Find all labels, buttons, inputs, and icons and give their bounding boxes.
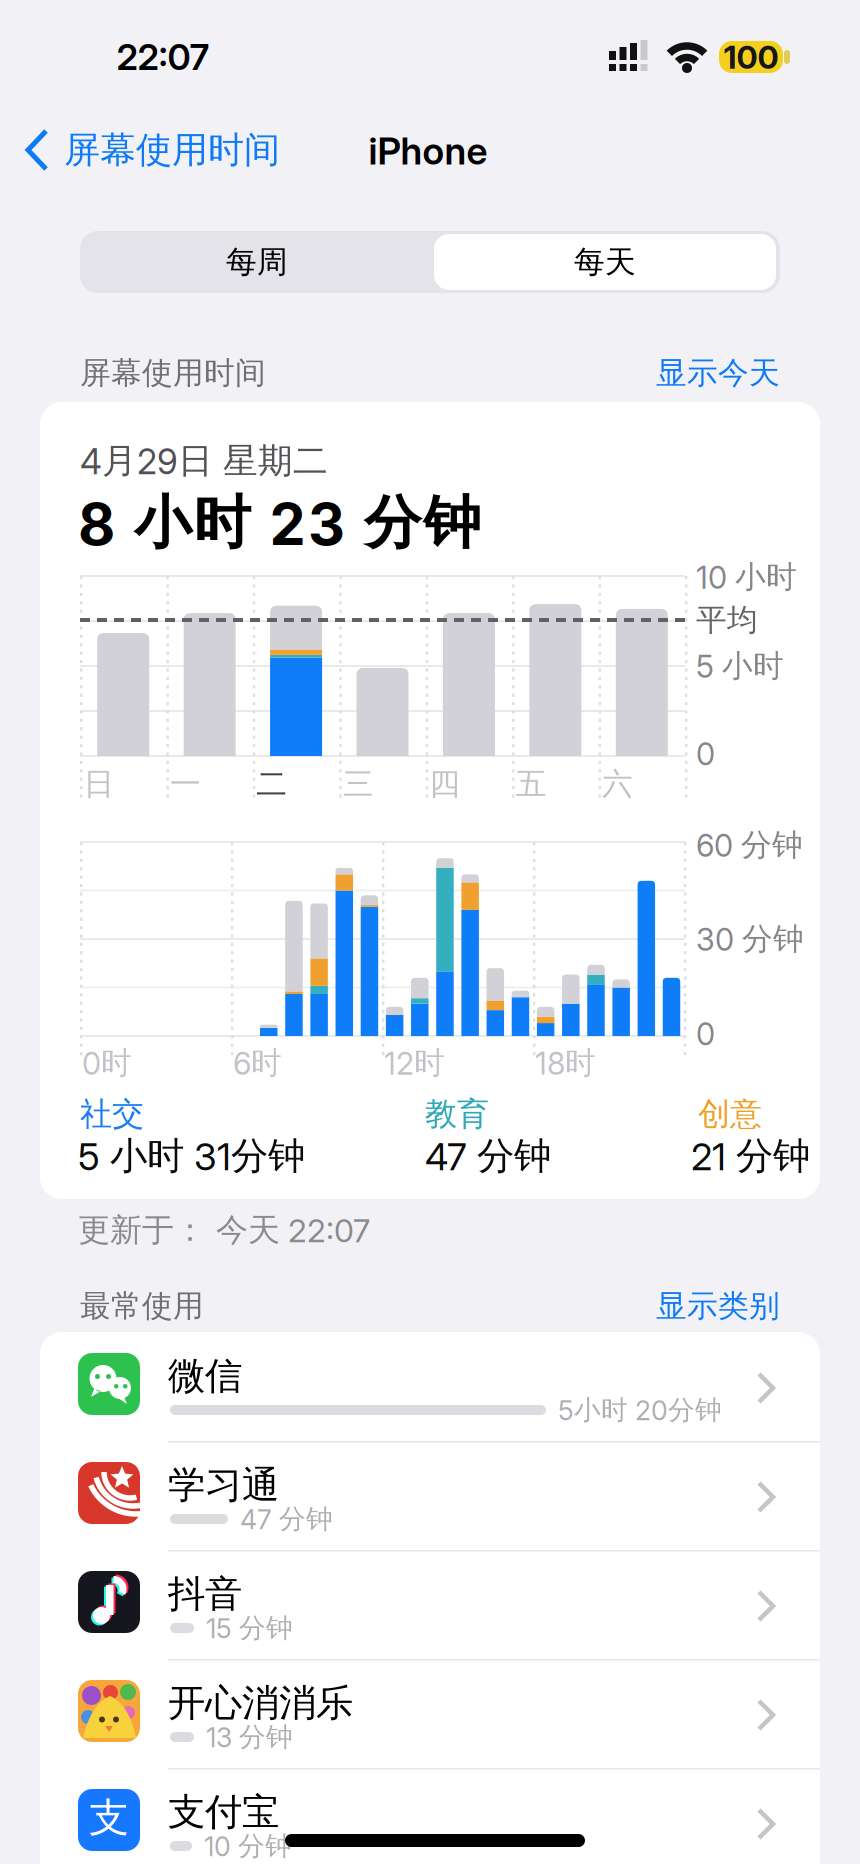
staticText: 显示今天	[656, 354, 780, 392]
button[interactable]: 学习通	[40, 1441, 820, 1550]
staticText: 日	[83, 765, 114, 803]
staticText: 每周	[226, 243, 288, 281]
staticText: 显示类别	[656, 1287, 780, 1325]
button[interactable]: 每天	[430, 231, 780, 293]
staticText: 5 小时 31分钟	[78, 1133, 305, 1179]
staticText: 10 分钟	[204, 1830, 292, 1862]
staticText: 二	[256, 765, 287, 803]
staticText: 五	[516, 765, 547, 803]
button[interactable]: 每周	[80, 231, 430, 293]
staticText: 教育	[425, 1094, 489, 1134]
staticText: 18时	[535, 1044, 596, 1082]
button[interactable]: 屏幕使用时间	[25, 121, 305, 179]
staticText: 六	[602, 765, 633, 803]
staticText: 8 小时 23 分钟	[78, 488, 480, 558]
staticText: 6时	[233, 1044, 282, 1082]
staticText: 60 分钟	[696, 826, 803, 864]
staticText: 100	[723, 38, 778, 76]
button[interactable]: 开心消消乐	[40, 1659, 820, 1768]
staticText: 0	[696, 1016, 715, 1052]
staticText: 5小时 20分钟	[558, 1394, 722, 1426]
staticText: 30 分钟	[696, 920, 804, 958]
staticText: 47 分钟	[240, 1503, 333, 1535]
staticText: 最常使用	[80, 1287, 204, 1325]
staticText: 创意	[698, 1094, 762, 1134]
staticText: 平均	[696, 601, 758, 639]
staticText: 13 分钟	[206, 1721, 293, 1753]
staticText: 0时	[82, 1044, 132, 1082]
staticText: 学习通	[168, 1462, 279, 1508]
staticText: 4月29日 星期二	[80, 440, 328, 482]
staticText: 5 小时	[696, 647, 784, 685]
staticText: 更新于： 今天 22:07	[78, 1210, 370, 1250]
staticText: 每天	[574, 243, 636, 281]
button[interactable]: 显示今天	[0, 0, 300, 54]
staticText: 22:07	[116, 36, 209, 78]
staticText: 抖音	[168, 1571, 242, 1617]
button[interactable]: 显示类别	[0, 0, 300, 54]
staticText: 四	[429, 765, 460, 803]
staticText: 屏幕使用时间	[80, 354, 266, 392]
staticText: 0	[696, 736, 715, 772]
button[interactable]: 微信	[40, 1332, 820, 1441]
staticText: 47 分钟	[425, 1133, 551, 1179]
staticText: 12时	[384, 1044, 445, 1082]
staticText: 支付宝	[168, 1789, 279, 1835]
staticText: 开心消消乐	[168, 1680, 353, 1726]
staticText: 一	[170, 765, 201, 803]
staticText: 10 小时	[696, 558, 797, 596]
staticText: 屏幕使用时间	[64, 128, 280, 172]
staticText: 支	[89, 1793, 129, 1842]
staticText: 微信	[168, 1353, 242, 1399]
button[interactable]: 支付宝	[40, 1768, 820, 1864]
staticText: 15 分钟	[206, 1612, 293, 1644]
staticText: 21 分钟	[691, 1133, 810, 1179]
staticText: iPhone	[368, 129, 487, 173]
button[interactable]: 抖音	[40, 1550, 820, 1659]
staticText: 社交	[80, 1094, 144, 1134]
staticText: 三	[343, 765, 374, 803]
